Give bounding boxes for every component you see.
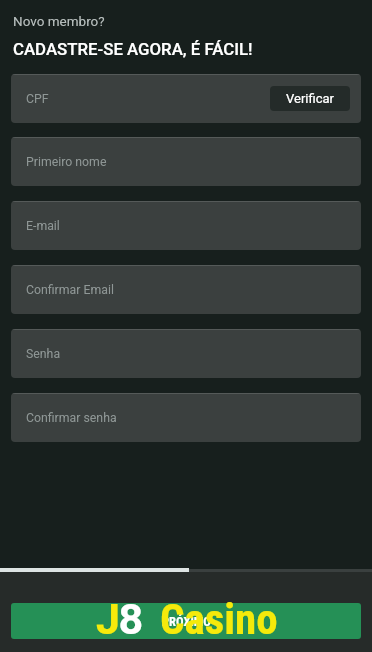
button[interactable]: CPF: [11, 74, 361, 123]
button[interactable]: Confirmar senha: [11, 393, 361, 442]
staticText: Confirmar Email: [26, 283, 114, 297]
staticText: E-mail: [26, 219, 60, 233]
staticText: CADASTRE-SE AGORA, É FÁCIL!: [13, 39, 253, 59]
staticText: J8: [96, 594, 142, 644]
staticText: Senha: [26, 347, 61, 361]
button[interactable]: Primeiro nome: [11, 137, 361, 186]
button[interactable]: PRÓXIMO: [11, 603, 361, 639]
staticText: Confirmar senha: [26, 411, 117, 425]
button[interactable]: E-mail: [11, 201, 361, 250]
staticText: Casino: [160, 594, 278, 644]
button[interactable]: Senha: [11, 329, 361, 378]
staticText: Novo membro?: [13, 13, 105, 29]
staticText: Primeiro nome: [26, 155, 107, 169]
staticText: PRÓXIMO: [162, 614, 211, 629]
button[interactable]: Verificar: [270, 86, 350, 111]
staticText: Verificar: [286, 91, 334, 106]
button[interactable]: Confirmar Email: [11, 265, 361, 314]
staticText: CPF: [26, 92, 49, 106]
